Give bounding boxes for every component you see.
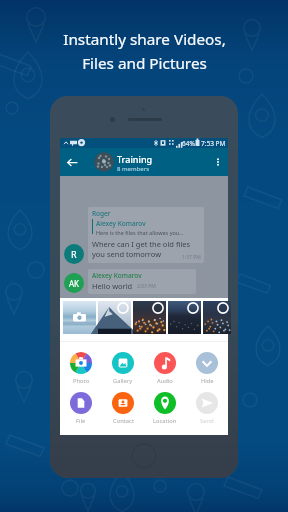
staticText: Alexey Komarov [92, 271, 142, 280]
button[interactable]: Audio [144, 352, 186, 385]
button[interactable]: Photo [60, 352, 102, 385]
button[interactable]: Contact [102, 392, 144, 425]
staticText: 64% [182, 139, 195, 148]
staticText: Alexey Komarov [96, 219, 146, 228]
staticText: 2:03 PM [137, 283, 156, 290]
button[interactable]: Hide [186, 352, 228, 385]
button[interactable]: Image 1 [98, 301, 131, 334]
staticText: Here is the files that allowes you... [96, 229, 184, 236]
button[interactable]: Image 4 [203, 301, 231, 334]
staticText: Gallery [113, 377, 133, 385]
staticText: Where can I get the old files [92, 239, 191, 249]
button[interactable]: Image 0 [63, 301, 96, 334]
staticText: File [76, 417, 86, 425]
staticText: AK [69, 278, 80, 289]
staticText: 7:53 PM [201, 139, 226, 148]
button[interactable]: Image 2 [133, 301, 166, 334]
staticText: Hide [201, 377, 214, 385]
staticText: Audio [157, 377, 173, 385]
button[interactable]: Back [62, 152, 83, 173]
staticText: R [71, 248, 77, 260]
staticText: Instantly share Videos, [63, 29, 226, 50]
staticText: Location [153, 417, 177, 425]
button[interactable]: Image 3 [168, 301, 201, 334]
button[interactable]: File [60, 392, 102, 425]
button[interactable]: Send [186, 392, 228, 425]
staticText: Files and Pictures [82, 53, 207, 74]
staticText: Contact [113, 417, 134, 425]
staticText: 1:57 PM [182, 254, 201, 261]
button[interactable]: Location [144, 392, 186, 425]
staticText: Training [117, 153, 153, 165]
staticText: you send tomorrow [92, 249, 162, 259]
staticText: 8 members [117, 165, 150, 173]
button[interactable]: Gallery [102, 352, 144, 385]
staticText: Hello world [92, 281, 133, 291]
staticText: Photo [73, 377, 90, 385]
staticText: Send [200, 417, 214, 425]
staticText: Roger [92, 209, 111, 218]
button[interactable]: More options [208, 152, 228, 172]
